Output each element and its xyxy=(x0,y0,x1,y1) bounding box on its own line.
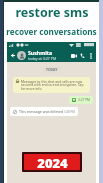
button[interactable]: Back xyxy=(9,52,16,59)
staticText: 3:28 PM xyxy=(64,110,75,114)
button[interactable]: 2024 xyxy=(24,154,80,170)
staticText: today at 3:27 PM xyxy=(28,56,57,61)
staticText: 3:27 PM xyxy=(78,98,90,102)
button[interactable] xyxy=(17,51,26,60)
staticText: Sushmita xyxy=(28,49,53,56)
button[interactable]: Voice call xyxy=(78,51,87,60)
staticText: TODAY xyxy=(46,67,58,72)
staticText: recover conversations xyxy=(6,26,97,37)
staticText: Messages to this chat and calls are now … xyxy=(21,79,87,91)
button[interactable]: More options xyxy=(87,52,94,59)
button[interactable]: Video call xyxy=(69,51,78,60)
staticText: This message was deleted xyxy=(19,109,64,114)
staticText: restore sms xyxy=(15,4,89,21)
button[interactable]: Back xyxy=(7,42,96,183)
staticText: 2024 xyxy=(37,154,68,170)
